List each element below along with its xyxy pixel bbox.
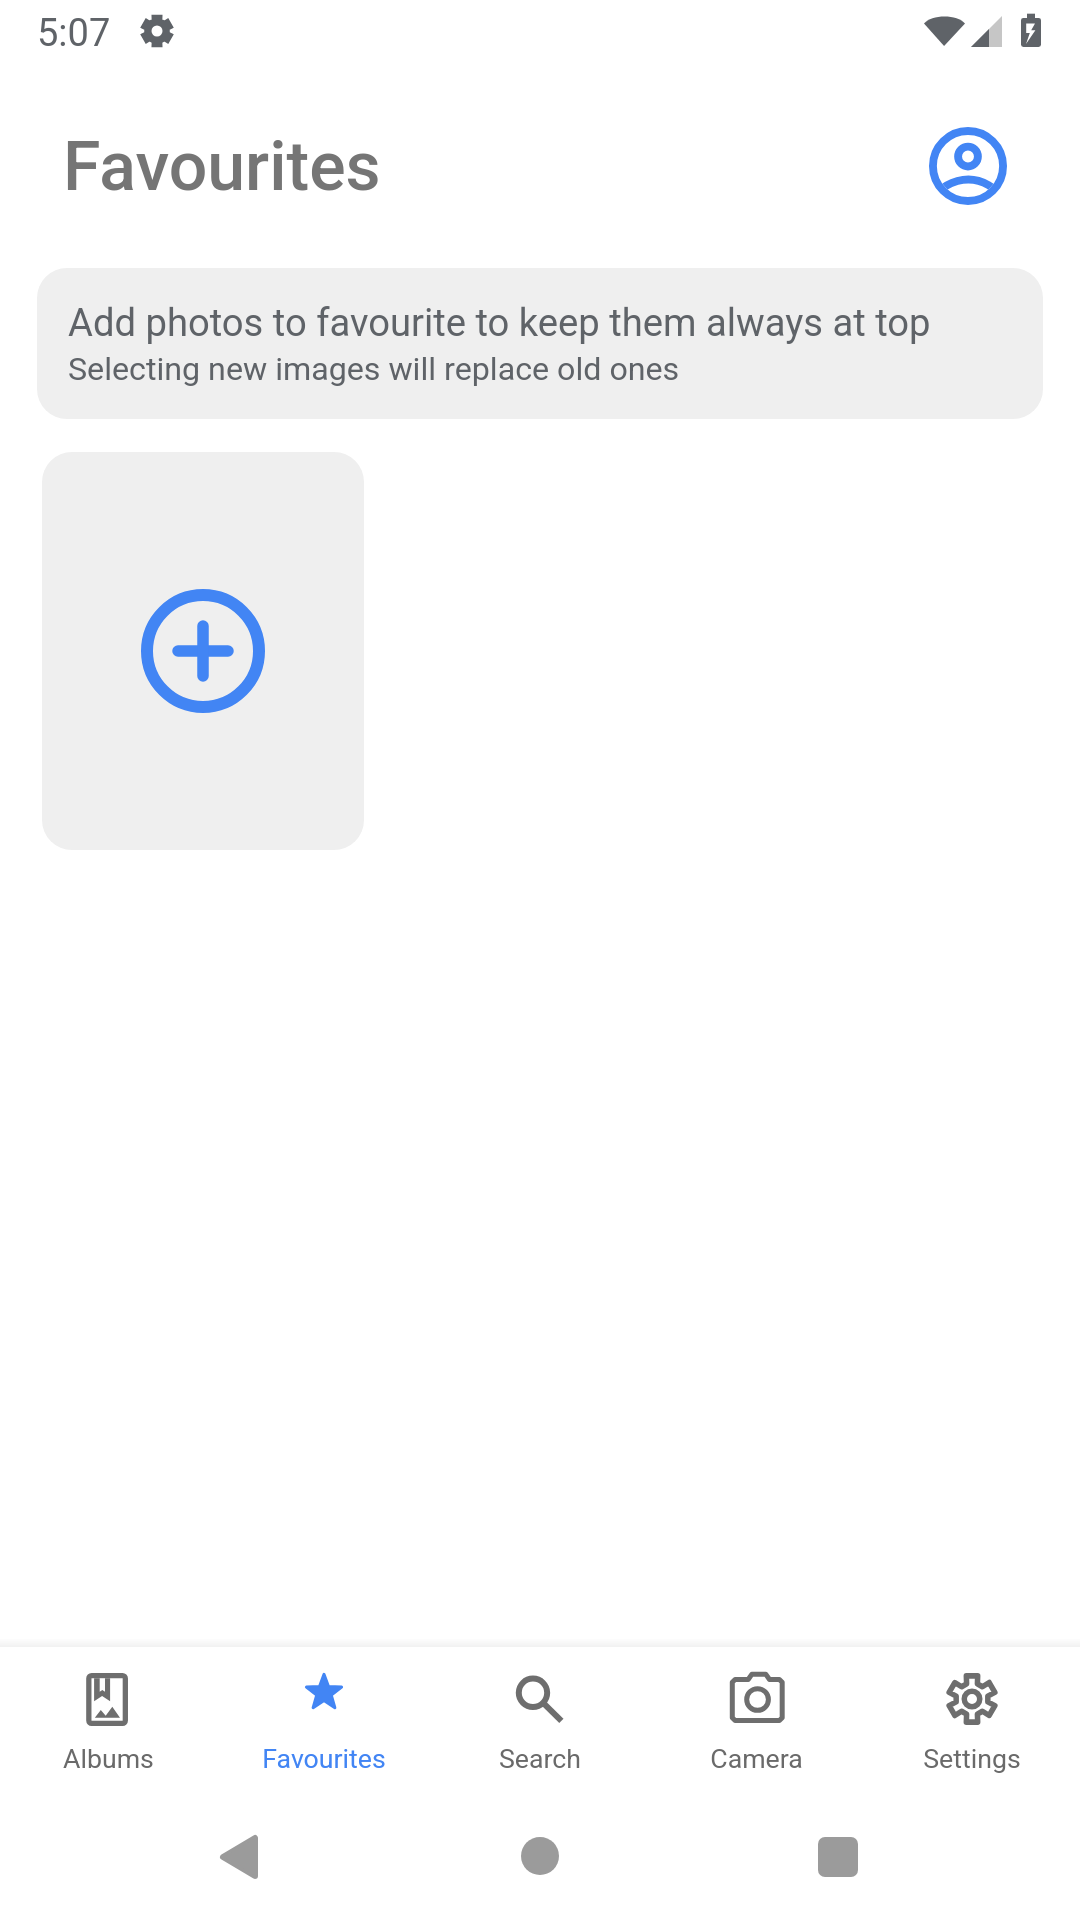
button[interactable]: Back xyxy=(216,1831,262,1883)
button[interactable]: Add photos to favourite to keep them alw… xyxy=(37,268,1043,419)
staticText: Search xyxy=(499,1743,581,1774)
staticText: Settings xyxy=(923,1743,1021,1774)
staticText: Add photos to favourite to keep them alw… xyxy=(68,301,931,346)
button[interactable]: Recents xyxy=(818,1837,858,1877)
staticText: Favourites xyxy=(63,127,381,207)
button[interactable]: Camera xyxy=(648,1647,864,1779)
button[interactable]: Albums xyxy=(0,1647,216,1779)
button[interactable]: Favourites xyxy=(216,1647,432,1779)
staticText: 5:07 xyxy=(37,11,111,56)
staticText: Camera xyxy=(710,1743,803,1774)
staticText: Selecting new images will replace old on… xyxy=(68,350,680,388)
button[interactable]: Home xyxy=(521,1837,559,1875)
staticText: Favourites xyxy=(262,1743,386,1774)
button[interactable]: Add photo xyxy=(42,452,364,850)
button[interactable]: Account xyxy=(919,117,1017,215)
staticText: Albums xyxy=(63,1743,154,1774)
button[interactable]: Search xyxy=(432,1647,648,1779)
button[interactable]: Settings xyxy=(864,1647,1080,1779)
